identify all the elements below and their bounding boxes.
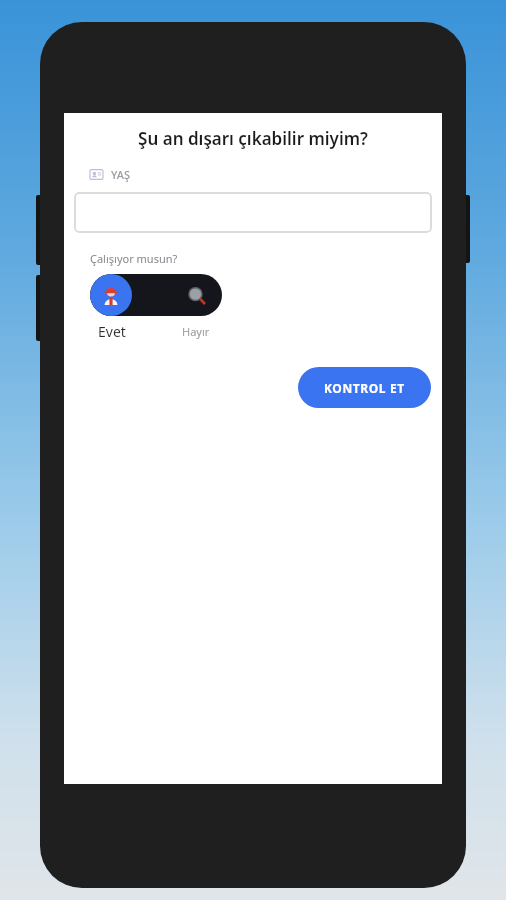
staticText: Hayır <box>182 324 210 339</box>
staticText: Çalışıyor musun? <box>90 251 178 266</box>
button[interactable]: Çalışıyor musun seçimi <box>90 274 222 316</box>
button[interactable]: KONTROL ET <box>298 367 431 408</box>
staticText: KONTROL ET <box>324 380 405 396</box>
staticText: Evet <box>98 322 126 341</box>
staticText: YAŞ <box>111 167 131 182</box>
staticText: Şu an dışarı çıkabilir miyim? <box>64 127 442 150</box>
button[interactable] <box>74 192 432 233</box>
